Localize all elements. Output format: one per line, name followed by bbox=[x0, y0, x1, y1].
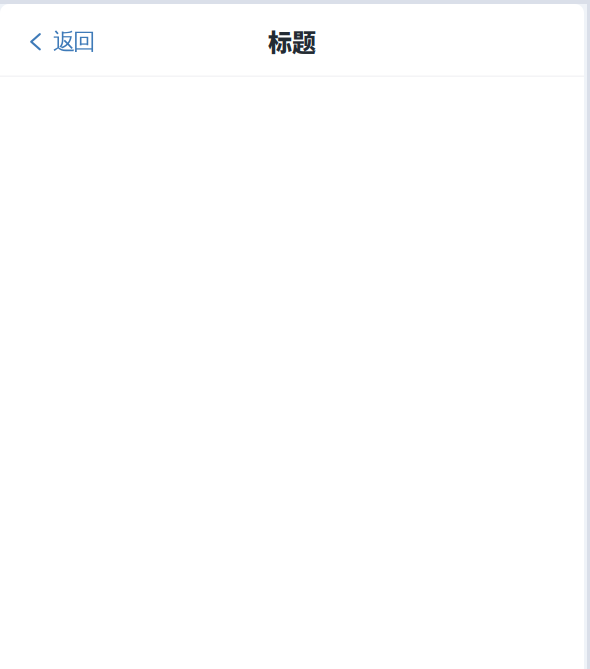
staticText: 标题 bbox=[268, 23, 316, 58]
button[interactable]: 返回 bbox=[0, 16, 110, 68]
staticText: 返回 bbox=[53, 28, 96, 56]
